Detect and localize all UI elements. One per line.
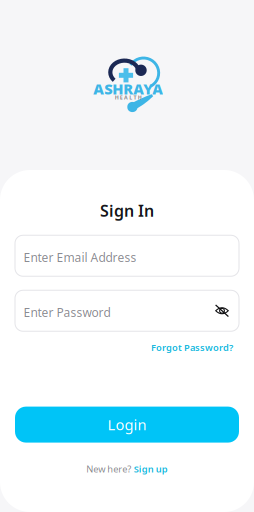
staticText: A — [124, 94, 128, 101]
staticText: Enter Password — [23, 304, 110, 320]
staticText: Enter Email Address — [23, 249, 136, 265]
staticText: H — [115, 94, 119, 101]
staticText: E — [120, 94, 123, 101]
staticText: Sign up — [134, 463, 168, 475]
staticText: Sign In — [100, 200, 154, 221]
staticText: L — [129, 94, 132, 101]
staticText: ASHRAYA — [93, 79, 163, 98]
staticText: T — [133, 94, 136, 101]
button[interactable]: Forgot Password? — [151, 338, 239, 357]
staticText: H — [138, 94, 142, 101]
staticText: Forgot Password? — [151, 341, 233, 354]
staticText: New here? — [86, 463, 131, 475]
button[interactable]: New here? — [86, 459, 168, 479]
button[interactable]: Login — [15, 407, 239, 443]
staticText: Login — [107, 415, 146, 434]
